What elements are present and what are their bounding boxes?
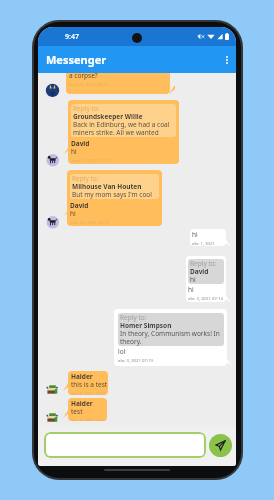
staticText: doesn't end with us digging up a corpse?… (69, 73, 164, 88)
staticText: hi abr. 3, 2021 07:14 (188, 285, 224, 302)
staticText: hi abr. 1, 2021 02:31 (192, 230, 226, 246)
staticText: Reply to: Homer Simpson In theory, Commu… (120, 313, 220, 346)
staticText: David hi mar. 31, 2021 13:19 (70, 201, 109, 226)
staticText: Reply to: Groundskeeper Willie Back in E… (73, 104, 170, 137)
staticText: lol abr. 3, 2021 07:19 (118, 347, 154, 364)
staticText: Reply to: David hi (190, 259, 217, 284)
button[interactable]: Reply to: Homer Simpson In theory, Commu… (114, 309, 227, 366)
button[interactable]: Profile picture (45, 214, 60, 229)
button[interactable]: doesn't end with us digging up a corpse?… (66, 73, 170, 94)
button[interactable]: Profile picture (45, 152, 60, 167)
button[interactable]: More options (218, 47, 236, 72)
staticText: David hi mar. 31, 2021 13:17 (71, 139, 110, 164)
button[interactable]: Reply to: Milhouse Van Houten But my mom… (67, 170, 162, 226)
staticText: Messenger (46, 52, 107, 67)
button[interactable]: Reply to: Groundskeeper Willie Back in E… (68, 100, 179, 164)
button[interactable]: Profile picture (45, 410, 60, 425)
button[interactable]: Message input (44, 432, 206, 458)
button[interactable]: Profile picture (45, 82, 60, 97)
staticText: Haider this is a test abr. 4, 2021 10:51 (71, 372, 108, 395)
button[interactable]: hi abr. 1, 2021 02:31 (190, 229, 226, 246)
staticText: Haider test abr. 4, 2021 10:53 (71, 399, 107, 421)
button[interactable]: Haider test abr. 4, 2021 10:53 (68, 398, 107, 421)
button[interactable]: Haider this is a test abr. 4, 2021 10:51 (68, 371, 108, 395)
staticText: 9:47 (65, 32, 79, 42)
button[interactable]: Reply to: David hi (186, 256, 226, 302)
button[interactable]: Profile picture (45, 382, 60, 397)
button[interactable]: Send (209, 434, 232, 457)
staticText: Reply to: Milhouse Van Houten But my mom… (72, 174, 152, 199)
